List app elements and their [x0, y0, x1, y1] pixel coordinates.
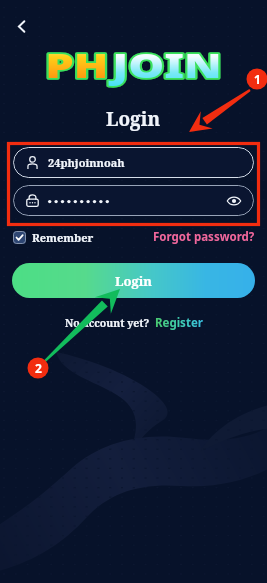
staticText: No account yet?	[65, 316, 150, 330]
button[interactable]: Back	[7, 12, 35, 40]
button[interactable]: Forgot password?	[153, 229, 255, 245]
staticText: Forgot password?	[153, 229, 255, 245]
staticText: Login	[106, 106, 161, 132]
staticText: Remember	[32, 230, 94, 245]
staticText: Register	[155, 315, 203, 331]
button[interactable]: Remember	[13, 230, 94, 245]
button[interactable]: Register	[155, 315, 203, 331]
button[interactable]: Login	[12, 263, 255, 298]
staticText: Login	[115, 272, 153, 290]
button[interactable]: 24phjoinnoah	[13, 147, 254, 178]
button[interactable]: Show password	[13, 185, 254, 216]
staticText: 24phjoinnoah	[48, 155, 125, 170]
staticText: JOIN	[112, 41, 222, 88]
staticText: 1	[254, 71, 261, 87]
button[interactable]: Show password	[226, 193, 242, 209]
staticText: JOIN	[112, 41, 222, 88]
staticText: PH	[45, 41, 109, 88]
staticText: PH	[45, 41, 109, 88]
staticText: 2	[35, 360, 42, 376]
